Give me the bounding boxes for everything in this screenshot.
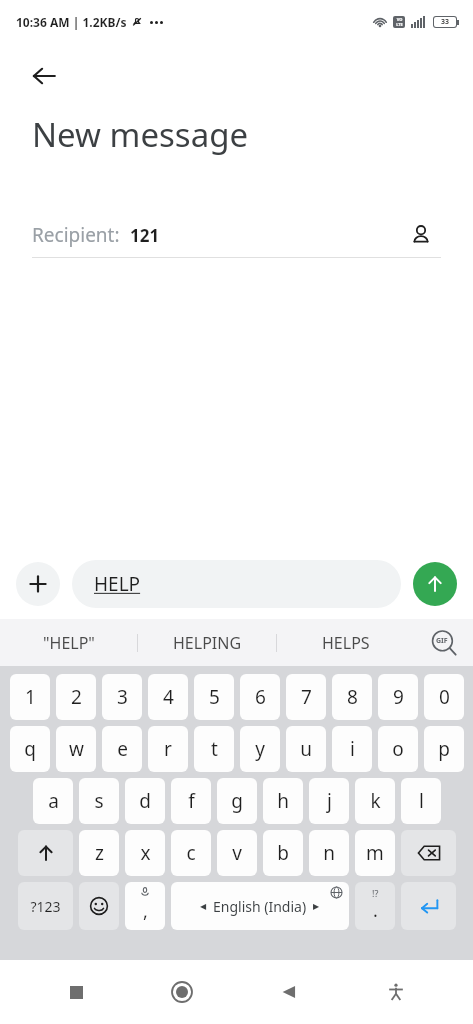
staticText: 3 [117,684,128,710]
staticText: h [277,788,289,814]
staticText: i [350,736,355,762]
staticText: e [117,736,128,762]
button[interactable] [401,882,456,930]
button[interactable]: j [309,778,349,824]
staticText: q [24,736,36,762]
button[interactable]: 8 [332,674,372,720]
button[interactable]: "HELP" [0,619,137,666]
button[interactable]: !? [355,882,395,930]
button[interactable]: g [217,778,257,824]
staticText: w [69,736,84,762]
button[interactable]: l [401,778,441,824]
button[interactable]: 9 [378,674,418,720]
button[interactable]: ◀ [171,882,349,930]
button[interactable]: Recents [52,968,100,1016]
staticText: HELP [94,571,141,597]
staticText: GIF [436,636,448,646]
button[interactable]: ?123 [18,882,73,930]
button[interactable]: m [355,830,395,876]
staticText: k [370,788,381,814]
button[interactable]: HELPING [138,619,276,666]
staticText: l [419,788,424,814]
staticText: ▶ [313,902,320,911]
staticText: 9 [393,684,404,710]
staticText: ?123 [30,897,61,916]
button[interactable]: 1 [10,674,50,720]
button[interactable]: , [125,882,165,930]
button[interactable]: Attach [16,562,60,606]
button[interactable]: e [102,726,142,772]
button[interactable]: z [79,830,119,876]
button[interactable]: o [378,726,418,772]
staticText: f [188,788,195,814]
button[interactable]: 6 [240,674,280,720]
staticText: n [323,840,335,866]
staticText: English (India) [213,897,307,916]
button[interactable]: u [286,726,326,772]
button[interactable]: Send [413,562,457,606]
button[interactable]: v [217,830,257,876]
staticText: 2 [71,684,82,710]
staticText: New message [32,112,249,157]
button[interactable]: k [355,778,395,824]
button[interactable]: d [125,778,165,824]
button[interactable] [18,830,73,876]
staticText: 7 [301,684,312,710]
button[interactable]: r [148,726,188,772]
staticText: "HELP" [43,632,95,654]
staticText: y [255,736,265,762]
button[interactable]: a [33,778,73,824]
staticText: 4 [163,684,174,710]
button[interactable]: p [424,726,464,772]
staticText: d [139,788,151,814]
staticText: 5 [209,684,220,710]
button[interactable]: 3 [102,674,142,720]
staticText: 0 [439,684,450,710]
button[interactable]: q [10,726,50,772]
button[interactable]: GIF search [415,619,473,666]
button[interactable]: Accessibility [372,968,420,1016]
staticText: s [94,788,104,814]
staticText: ◀ [200,902,207,911]
staticText: c [186,840,196,866]
button[interactable]: s [79,778,119,824]
staticText: p [438,736,450,762]
button[interactable]: i [332,726,372,772]
button[interactable]: Back [22,54,66,98]
staticText: x [140,840,151,866]
staticText: VO LTE [396,17,403,27]
staticText: b [277,840,289,866]
staticText: 10:36 AM | 1.2KB/s [16,14,127,30]
button[interactable]: h [263,778,303,824]
staticText: 6 [255,684,266,710]
button[interactable]: w [56,726,96,772]
button[interactable]: x [125,830,165,876]
staticText: !? [372,887,379,899]
staticText: , [143,899,148,924]
button[interactable]: 5 [194,674,234,720]
button[interactable]: HELPS [277,619,415,666]
staticText: j [327,788,332,814]
staticText: z [95,840,104,866]
staticText: . [373,898,378,923]
button[interactable]: Home [158,968,206,1016]
staticText: t [211,736,218,762]
staticText: 1 [25,684,36,710]
button[interactable]: 2 [56,674,96,720]
button[interactable]: Choose contact [401,215,441,255]
button[interactable]: Back [265,968,313,1016]
button[interactable] [401,830,456,876]
button[interactable]: y [240,726,280,772]
button[interactable]: n [309,830,349,876]
button[interactable] [79,882,119,930]
button[interactable]: f [171,778,211,824]
button[interactable]: b [263,830,303,876]
button[interactable]: HELP [72,560,401,608]
button[interactable]: 0 [424,674,464,720]
button[interactable]: t [194,726,234,772]
button[interactable]: c [171,830,211,876]
staticText: a [48,788,59,814]
button[interactable]: 4 [148,674,188,720]
button[interactable]: 7 [286,674,326,720]
staticText: r [164,736,172,762]
